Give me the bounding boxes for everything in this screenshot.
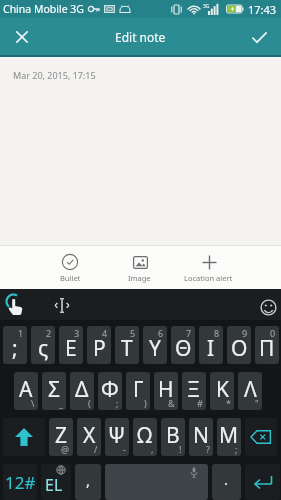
staticText: China Mobile 3G bbox=[3, 2, 84, 16]
staticText: Λ bbox=[244, 375, 257, 404]
staticText: Ψ bbox=[108, 421, 126, 450]
staticText: EL bbox=[45, 474, 63, 496]
staticText: - bbox=[123, 443, 126, 455]
staticText: ; bbox=[235, 443, 238, 455]
staticText: Edit note bbox=[115, 29, 166, 45]
button[interactable] bbox=[247, 25, 271, 49]
staticText: Ν bbox=[193, 421, 209, 450]
button[interactable]: Ι bbox=[199, 326, 223, 364]
staticText: 5 bbox=[130, 327, 136, 339]
staticText: Γ bbox=[133, 375, 144, 404]
button[interactable]: . bbox=[212, 464, 241, 500]
button[interactable] bbox=[4, 293, 28, 317]
staticText: Υ bbox=[149, 334, 161, 363]
staticText: 2 bbox=[46, 327, 52, 339]
button[interactable]: Bullet bbox=[35, 246, 105, 289]
staticText: Δ bbox=[75, 375, 89, 404]
staticText: 6 bbox=[158, 327, 164, 339]
staticText: @ bbox=[61, 443, 70, 455]
staticText: ( bbox=[88, 397, 91, 409]
staticText: 3G bbox=[203, 3, 210, 10]
staticText: 3 bbox=[74, 327, 80, 339]
staticText: ; bbox=[12, 334, 18, 363]
staticText: Ο bbox=[231, 334, 248, 363]
staticText: Β bbox=[166, 421, 180, 450]
staticText: Ζ bbox=[55, 421, 68, 450]
button[interactable]: Σ bbox=[42, 372, 66, 410]
staticText: ; bbox=[116, 397, 119, 409]
button[interactable]: Γ bbox=[126, 372, 150, 410]
staticText: 8 bbox=[214, 327, 220, 339]
button[interactable]: ; bbox=[3, 326, 27, 364]
staticText: Χ bbox=[83, 421, 96, 450]
staticText: Bullet bbox=[60, 273, 81, 283]
staticText: Η bbox=[158, 375, 174, 404]
staticText: 12# bbox=[5, 471, 36, 494]
staticText: Τ bbox=[121, 334, 133, 363]
staticText: \ bbox=[31, 397, 35, 409]
button[interactable] bbox=[245, 418, 277, 456]
button[interactable]: Ρ bbox=[87, 326, 111, 364]
button[interactable]: Υ bbox=[143, 326, 167, 364]
button[interactable]: 12# bbox=[3, 464, 37, 500]
staticText: , bbox=[151, 443, 154, 455]
staticText: Ι bbox=[207, 334, 215, 363]
button[interactable] bbox=[10, 25, 34, 49]
button[interactable]: , bbox=[75, 464, 101, 500]
button[interactable]: Ζ bbox=[49, 418, 73, 456]
staticText: . bbox=[224, 469, 229, 489]
staticText: Κ bbox=[216, 375, 229, 404]
button[interactable]: Ξ bbox=[182, 372, 206, 410]
button[interactable]: Β bbox=[161, 418, 185, 456]
staticText: ς bbox=[38, 334, 49, 363]
button[interactable]: Χ bbox=[77, 418, 101, 456]
button[interactable]: Δ bbox=[70, 372, 94, 410]
staticText: / bbox=[94, 443, 98, 455]
button[interactable]: Image bbox=[105, 246, 174, 289]
button[interactable]: Ε bbox=[59, 326, 83, 364]
button[interactable]: Location alert bbox=[174, 246, 243, 289]
staticText: 9 bbox=[242, 327, 248, 339]
staticText: _ bbox=[59, 397, 63, 409]
button[interactable]: Τ bbox=[115, 326, 139, 364]
button[interactable] bbox=[245, 464, 280, 500]
staticText: Mar 20, 2015, 17:15 bbox=[13, 69, 96, 81]
button[interactable]: Ο bbox=[227, 326, 251, 364]
staticText: Ξ bbox=[187, 375, 201, 404]
staticText: ! bbox=[179, 443, 182, 455]
button[interactable]: Φ bbox=[98, 372, 122, 410]
button[interactable]: Λ bbox=[238, 372, 262, 410]
button[interactable]: Ν bbox=[189, 418, 213, 456]
staticText: Ρ bbox=[93, 334, 106, 363]
staticText: Ω bbox=[137, 421, 153, 450]
staticText: Ε bbox=[65, 334, 77, 363]
staticText: & bbox=[168, 397, 175, 409]
staticText: ? bbox=[206, 443, 210, 455]
button[interactable]: Κ bbox=[210, 372, 234, 410]
button[interactable]: EL bbox=[41, 464, 71, 500]
button[interactable]: Η bbox=[154, 372, 178, 410]
staticText: Φ bbox=[101, 375, 119, 404]
staticText: Image bbox=[128, 273, 151, 283]
staticText: 7 bbox=[186, 327, 192, 339]
staticText: Location alert bbox=[184, 273, 233, 283]
staticText: " bbox=[255, 397, 259, 409]
button[interactable]: Π bbox=[255, 326, 279, 364]
staticText: Σ bbox=[48, 375, 61, 404]
button[interactable] bbox=[256, 295, 280, 319]
button[interactable]: Θ bbox=[171, 326, 195, 364]
staticText: 0 bbox=[270, 327, 276, 339]
staticText: 17:43 bbox=[248, 2, 277, 17]
button[interactable] bbox=[3, 418, 45, 456]
button[interactable] bbox=[50, 293, 74, 317]
staticText: # bbox=[197, 397, 203, 409]
button[interactable]: Α bbox=[14, 372, 38, 410]
staticText: Θ bbox=[175, 334, 192, 363]
staticText: ) bbox=[144, 397, 147, 409]
button[interactable]: Ω bbox=[133, 418, 157, 456]
button[interactable]: Ψ bbox=[105, 418, 129, 456]
button[interactable]: ς bbox=[31, 326, 55, 364]
button[interactable] bbox=[105, 464, 208, 500]
button[interactable]: Μ bbox=[217, 418, 241, 456]
staticText: Α bbox=[19, 375, 33, 404]
